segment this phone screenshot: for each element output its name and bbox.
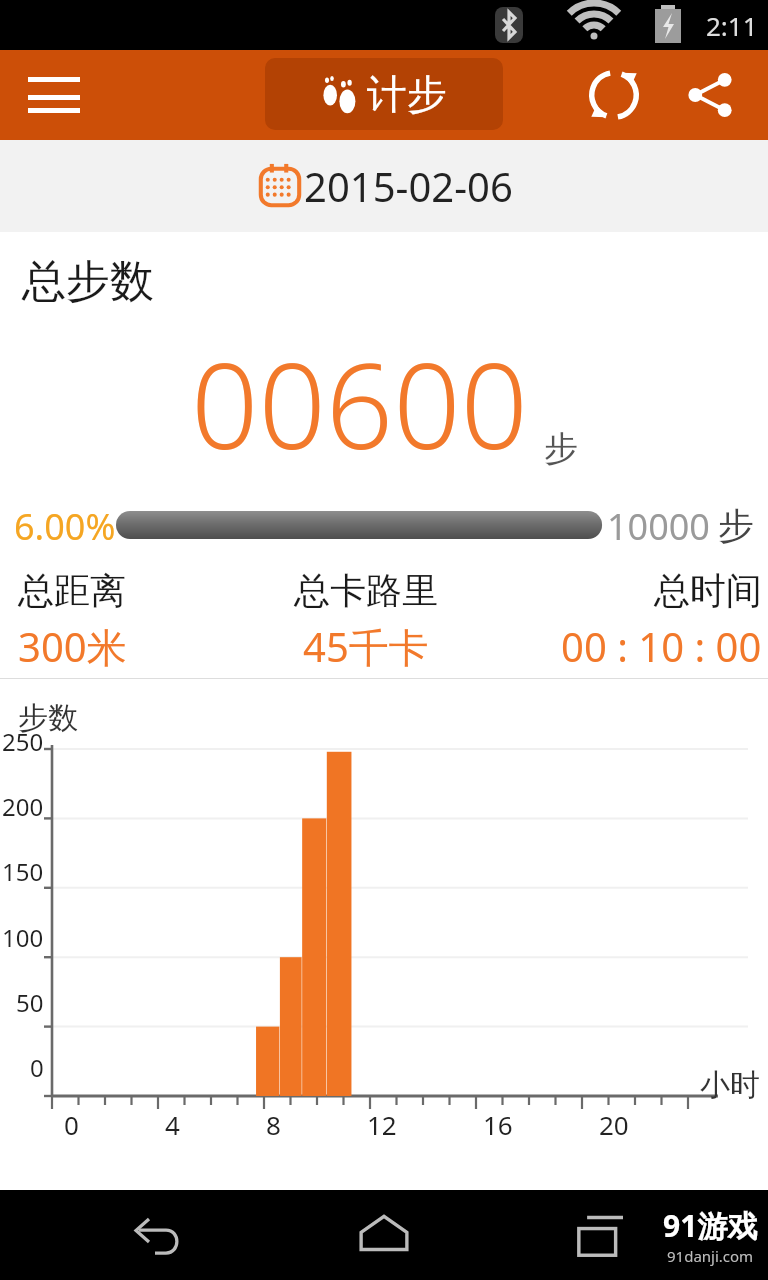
- staticText: 6.00%: [14, 502, 116, 548]
- button[interactable]: 2015-02-06: [0, 140, 768, 232]
- button[interactable]: 计步: [265, 58, 503, 130]
- staticText: 2015-02-06: [304, 159, 513, 213]
- staticText: 小时: [700, 1066, 760, 1104]
- button[interactable]: 总卡路里: [244, 568, 488, 674]
- staticText: 16: [483, 1107, 513, 1142]
- button[interactable]: 总距离: [18, 568, 244, 674]
- staticText: 10000: [607, 502, 710, 548]
- staticText: 总步数: [22, 254, 154, 309]
- button[interactable]: Menu: [18, 59, 90, 131]
- staticText: 00 : 10 : 00: [561, 619, 762, 673]
- button[interactable]: Refresh: [578, 59, 650, 131]
- staticText: 总距离: [18, 568, 126, 613]
- staticText: 250: [2, 725, 44, 758]
- staticText: 45千卡: [303, 619, 429, 674]
- button[interactable]: Share: [674, 59, 746, 131]
- button[interactable]: Back: [120, 1197, 196, 1273]
- staticText: 0: [64, 1107, 79, 1142]
- staticText: 12: [367, 1107, 397, 1142]
- button[interactable]: Home: [344, 1195, 424, 1275]
- staticText: 300米: [18, 619, 127, 674]
- staticText: 150: [2, 855, 44, 888]
- staticText: 20: [599, 1107, 629, 1142]
- staticText: 91游戏: [663, 1205, 758, 1246]
- staticText: 00600: [191, 323, 528, 484]
- staticText: 总时间: [654, 568, 762, 613]
- button[interactable]: Recents: [562, 1197, 638, 1273]
- staticText: 4: [165, 1107, 180, 1142]
- staticText: 2:11: [706, 8, 758, 43]
- staticText: 200: [2, 790, 44, 823]
- staticText: 步数: [18, 699, 78, 737]
- staticText: 计步: [367, 69, 447, 119]
- staticText: 步: [544, 427, 578, 470]
- staticText: 0: [30, 1051, 44, 1084]
- staticText: 8: [266, 1107, 281, 1142]
- staticText: 91danji.com: [667, 1246, 754, 1266]
- staticText: 步: [718, 503, 754, 548]
- staticText: 50: [16, 986, 44, 1019]
- button[interactable]: 总时间: [488, 568, 762, 673]
- staticText: 总卡路里: [294, 568, 438, 613]
- staticText: 100: [2, 921, 44, 954]
